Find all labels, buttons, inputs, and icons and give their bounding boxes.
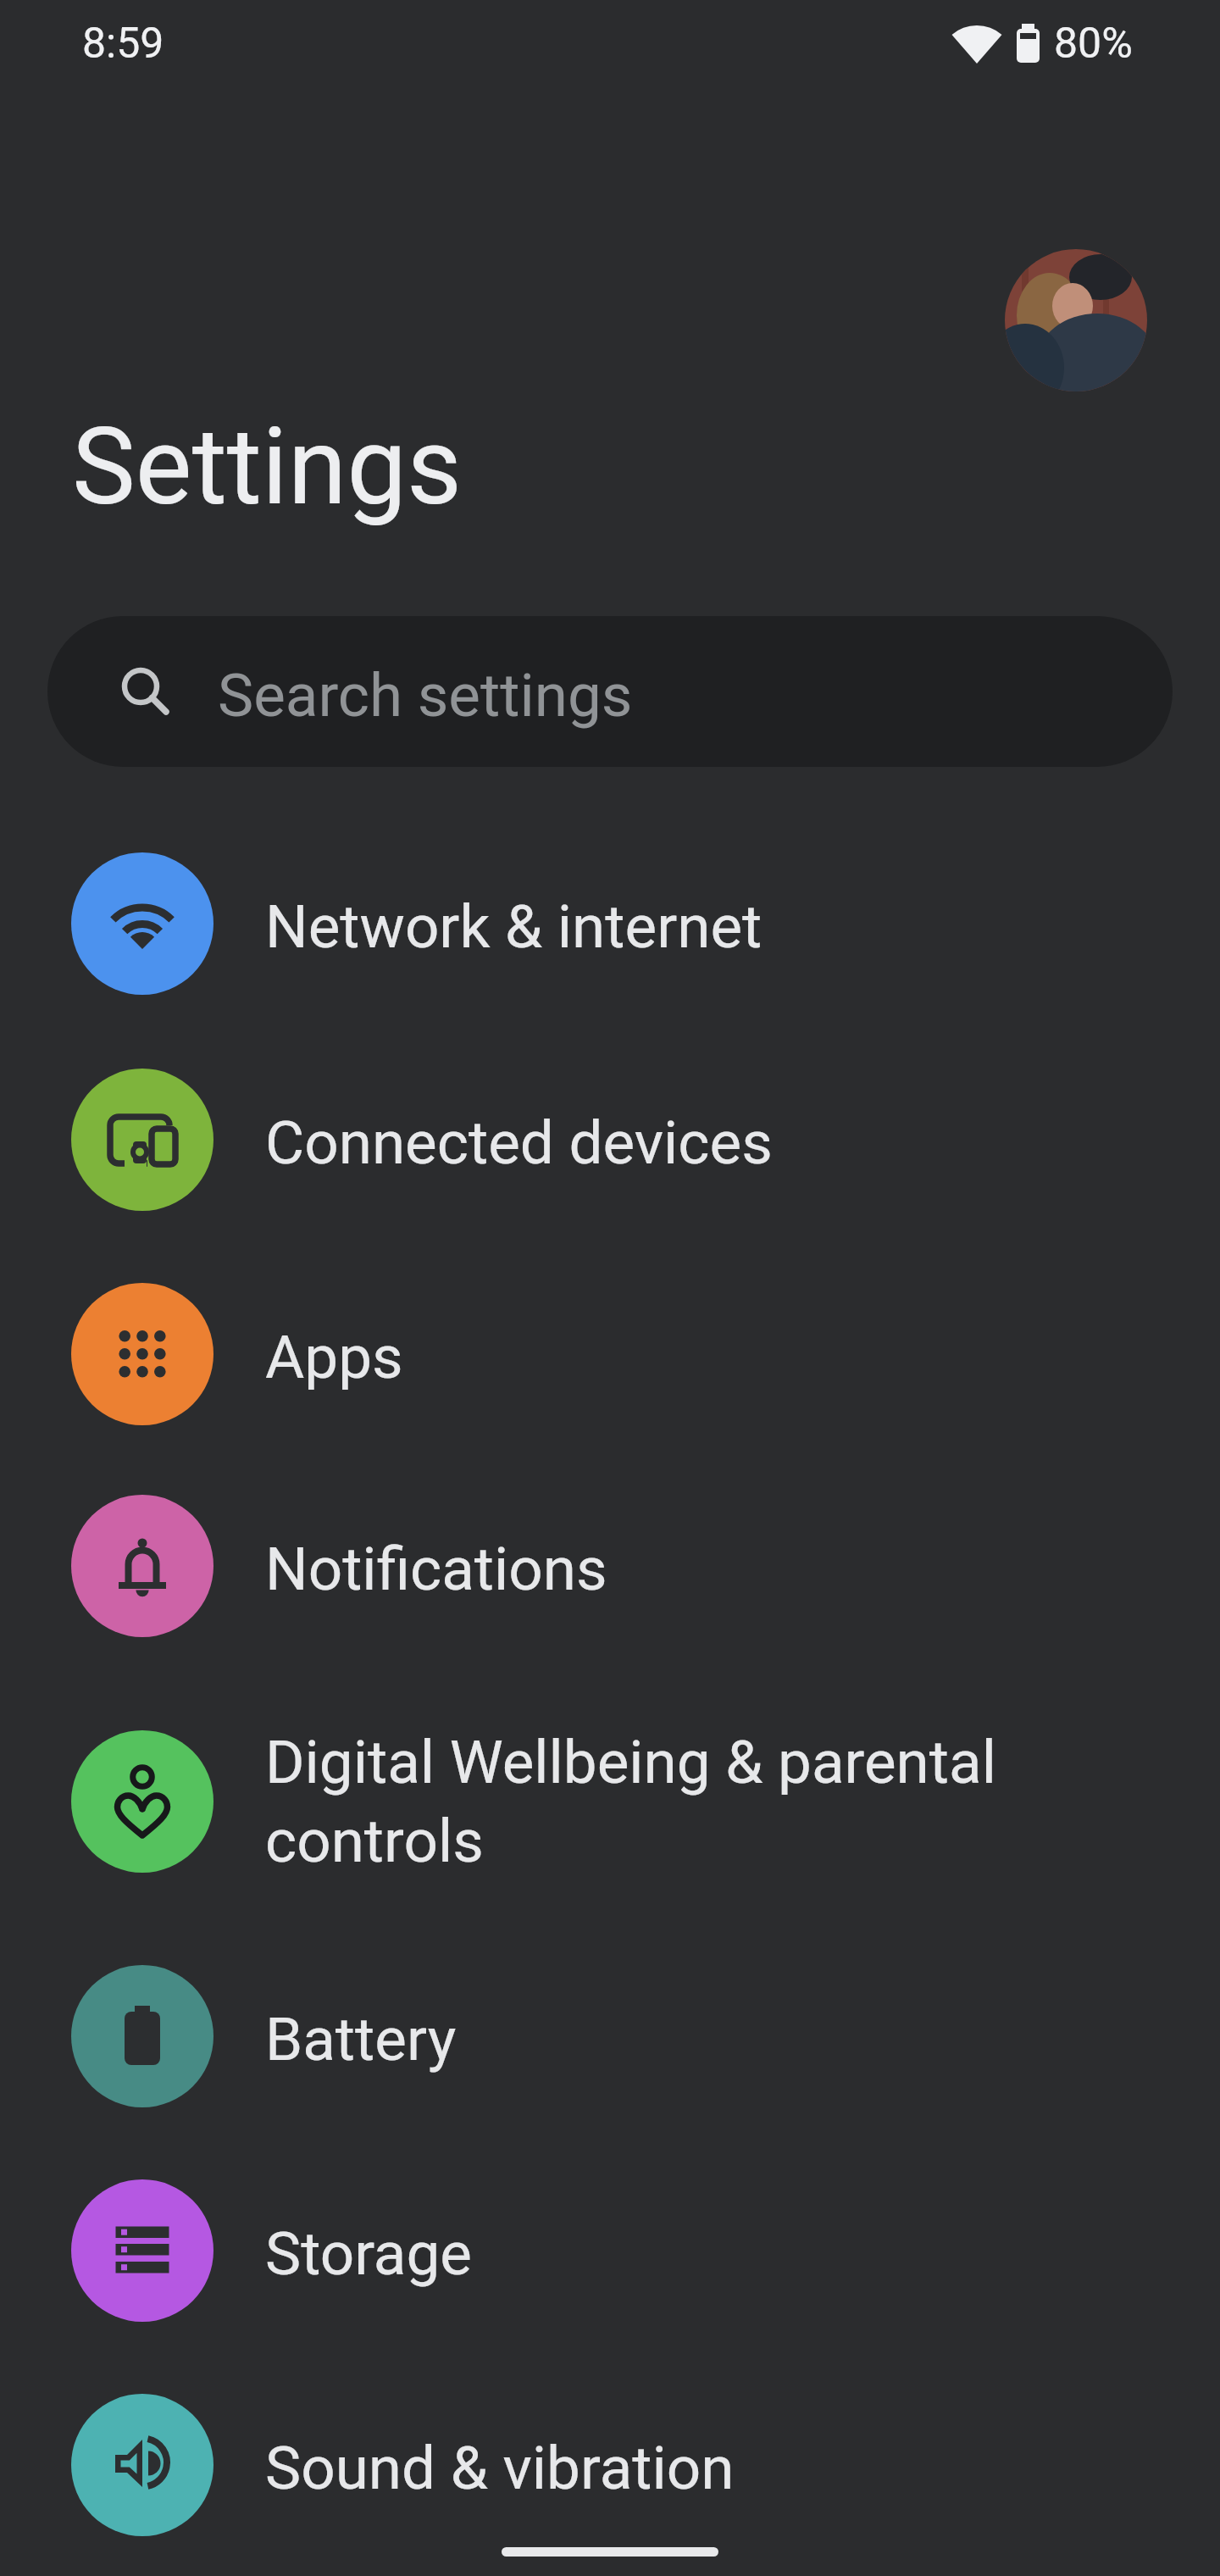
- button[interactable]: Digital Wellbeing & parental controls: [0, 1683, 1220, 1920]
- staticText: Storage: [265, 2218, 472, 2289]
- staticText: Settings: [72, 404, 463, 530]
- staticText: Network & internet: [265, 891, 762, 962]
- button[interactable]: Notifications: [0, 1458, 1220, 1673]
- button[interactable]: [1005, 249, 1147, 391]
- staticText: Connected devices: [265, 1108, 773, 1178]
- staticText: Apps: [265, 1322, 403, 1392]
- button[interactable]: Battery: [0, 1929, 1220, 2143]
- staticText: Sound & vibration: [265, 2433, 735, 2503]
- staticText: Battery: [265, 2004, 457, 2074]
- button[interactable]: Apps: [0, 1246, 1220, 1461]
- button[interactable]: Network & internet: [0, 816, 1220, 1030]
- staticText: 80%: [1054, 19, 1133, 69]
- staticText: Search settings: [218, 660, 633, 730]
- button[interactable]: Storage: [0, 2143, 1220, 2357]
- staticText: Notifications: [265, 1534, 607, 1604]
- staticText: Digital Wellbeing & parental controls: [265, 1727, 996, 1876]
- staticText: 8:59: [82, 19, 164, 69]
- button[interactable]: Search settings: [47, 616, 1173, 767]
- button[interactable]: Connected devices: [0, 1032, 1220, 1246]
- button[interactable]: Sound & vibration: [0, 2357, 1220, 2572]
